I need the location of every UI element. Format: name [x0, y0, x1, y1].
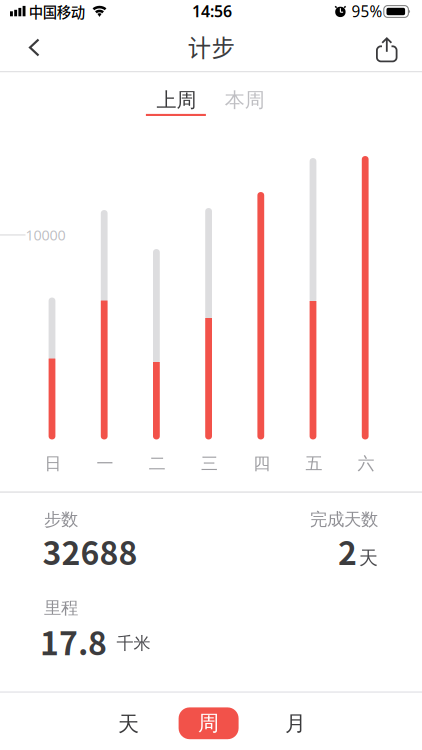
- button[interactable]: 本周: [215, 86, 275, 114]
- staticText: 天: [359, 546, 378, 570]
- staticText: 二: [149, 453, 166, 474]
- staticText: 五: [305, 453, 322, 474]
- staticText: 周: [198, 710, 219, 736]
- button[interactable]: 月: [266, 708, 324, 739]
- staticText: 2: [338, 528, 357, 574]
- staticText: 32688: [42, 528, 137, 574]
- staticText: 四: [253, 453, 270, 474]
- staticText: 计步: [187, 29, 235, 63]
- staticText: 17.8: [40, 618, 107, 664]
- button[interactable]: Back: [0, 0, 422, 750]
- staticText: 本周: [225, 87, 265, 113]
- button[interactable]: 天: [99, 708, 157, 739]
- staticText: 步数: [44, 509, 78, 530]
- staticText: 中国移动: [29, 1, 85, 22]
- staticText: 千米: [116, 632, 150, 654]
- staticText: 14:56: [192, 0, 232, 22]
- staticText: 10000: [25, 225, 65, 245]
- staticText: 日: [44, 453, 61, 474]
- staticText: 完成天数: [310, 509, 378, 530]
- staticText: 六: [358, 453, 375, 474]
- button[interactable]: Share: [0, 0, 422, 750]
- staticText: 上周: [156, 87, 196, 113]
- staticText: 里程: [44, 597, 78, 619]
- button[interactable]: 周: [179, 707, 239, 739]
- staticText: 月: [285, 710, 306, 737]
- staticText: 一: [97, 453, 114, 474]
- staticText: 三: [201, 453, 218, 474]
- staticText: 95%: [351, 1, 382, 22]
- button[interactable]: 上周: [146, 86, 206, 114]
- staticText: 天: [118, 711, 139, 737]
